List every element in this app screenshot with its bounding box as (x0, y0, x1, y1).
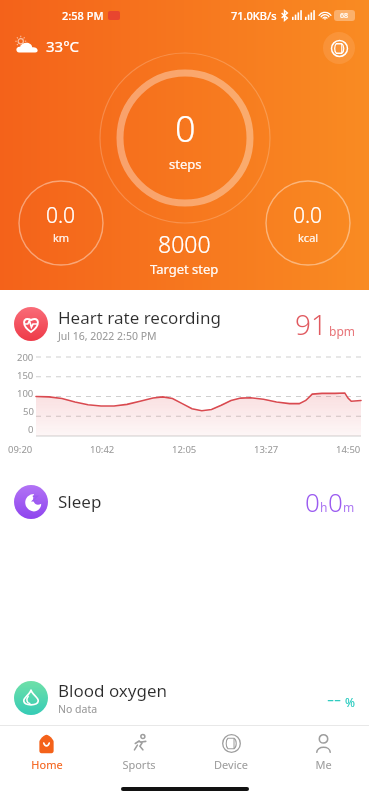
staticText: h (320, 499, 328, 515)
button[interactable]: Heart rate recording (0, 295, 369, 462)
staticText: 0.0 (293, 201, 323, 230)
button[interactable]: Device (323, 32, 355, 64)
staticText: 13:27 (254, 443, 279, 456)
staticText: 0 (328, 484, 343, 519)
staticText: 68 (340, 11, 349, 21)
staticText: 200 (17, 351, 34, 364)
staticText: 09:20 (8, 443, 33, 456)
button[interactable]: Home (0, 726, 93, 778)
staticText: Blood oxygen (58, 679, 168, 702)
staticText: -- (327, 683, 342, 713)
staticText: 33°C (46, 36, 80, 56)
staticText: Home (31, 757, 63, 772)
staticText: 10:42 (90, 443, 115, 456)
staticText: 100 (17, 387, 34, 400)
button[interactable]: Me (277, 726, 369, 778)
button[interactable]: Blood oxygen (0, 667, 369, 726)
staticText: Target step (150, 260, 219, 278)
staticText: 12:05 (172, 443, 197, 456)
staticText: Sleep (58, 490, 305, 513)
staticText: 150 (17, 369, 34, 382)
staticText: Device (214, 757, 248, 772)
staticText: 71.0KB/s (231, 8, 277, 23)
staticText: kcal (298, 230, 319, 245)
staticText: bpm (329, 323, 355, 339)
staticText: km (53, 230, 70, 245)
staticText: Sports (122, 757, 156, 772)
staticText: 0.0 (46, 201, 76, 230)
staticText: steps (169, 155, 202, 173)
staticText: Heart rate recording (58, 306, 221, 329)
staticText: No data (58, 702, 98, 716)
staticText: 50 (23, 405, 34, 418)
staticText: Jul 16, 2022 2:50 PM (58, 329, 157, 343)
button[interactable]: Sleep (0, 472, 369, 657)
staticText: % (345, 694, 355, 710)
staticText: 0 (305, 484, 320, 519)
button[interactable]: Sports (93, 726, 185, 778)
staticText: 0 (175, 104, 196, 153)
staticText: 2:58 PM (62, 8, 104, 23)
staticText: 8000 (158, 228, 211, 259)
staticText: 0 (28, 423, 34, 436)
staticText: m (343, 499, 355, 515)
staticText: 14:50 (336, 443, 361, 456)
staticText: Me (315, 757, 332, 772)
button[interactable]: Device (185, 726, 277, 778)
staticText: 91 (295, 305, 327, 343)
